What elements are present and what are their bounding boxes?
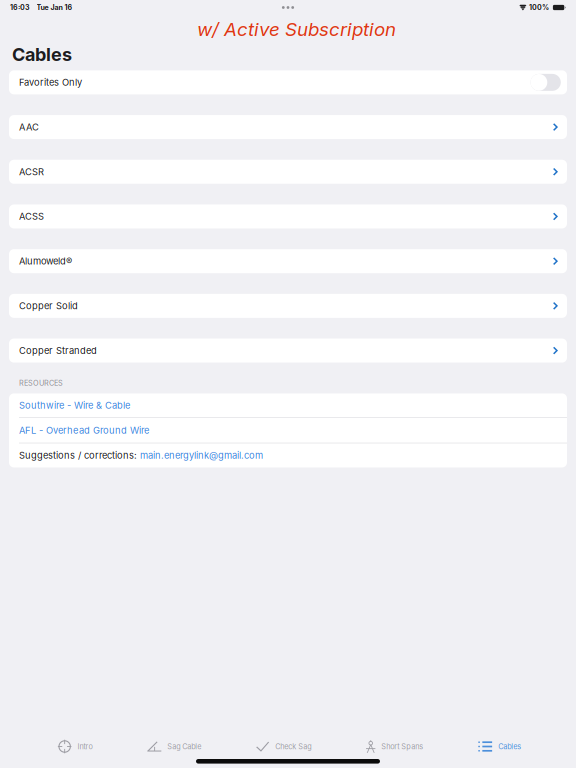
staticText: Short Spans [381,742,423,751]
staticText: AFL - Overhead Ground Wire [19,425,149,436]
staticText: Copper Stranded [19,345,97,356]
staticText: Suggestions / corrections: [19,450,140,461]
button[interactable]: ACSR [9,160,567,184]
staticText: Southwire - Wire & Cable [19,400,130,411]
button[interactable]: Suggestions / corrections: [9,443,567,467]
button[interactable]: Southwire - Wire & Cable [9,393,567,417]
button[interactable]: Copper Solid [9,294,567,318]
button[interactable]: Favorites Only [530,74,561,91]
button[interactable]: Cables [478,735,521,757]
button[interactable]: ACSS [9,204,567,228]
button[interactable]: Copper Stranded [9,339,567,363]
staticText: Copper Solid [19,300,78,311]
button[interactable]: Alumoweld® [9,249,567,273]
staticText: main.energylink@gmail.com [140,450,263,461]
staticText: Cables [498,742,521,751]
staticText: AAC [19,121,39,133]
staticText: Tue Jan 16 [36,3,72,12]
button[interactable]: Intro [58,735,92,757]
button[interactable]: AFL - Overhead Ground Wire [9,418,567,443]
staticText: ACSR [19,166,44,177]
button[interactable]: AAC [9,115,567,139]
staticText: Alumoweld® [19,255,72,267]
staticText: Cables [12,44,72,65]
staticText: Favorites Only [19,77,82,88]
staticText: Check Sag [275,742,311,751]
staticText: RESOURCES [19,379,63,387]
staticText: ACSS [19,211,44,222]
staticText: 16:03 [10,3,30,12]
staticText: w/ Active Subscription [197,18,396,41]
staticText: Sag Cable [167,742,201,751]
staticText: Intro [77,742,92,751]
staticText: 100% [529,3,549,12]
button[interactable]: Short Spans [366,735,423,757]
button[interactable]: Sag Cable [147,735,201,757]
button[interactable]: Check Sag [256,735,311,757]
